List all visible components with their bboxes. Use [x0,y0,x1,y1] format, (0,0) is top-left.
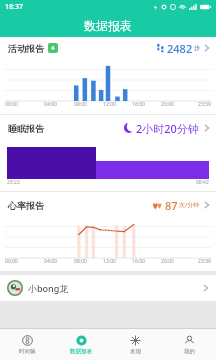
staticText: 12:00 [103,101,116,108]
staticText: 23:22 [7,179,20,186]
staticText: 4 [51,44,55,52]
button[interactable]: 发现 [108,329,162,360]
staticText: 小bong龙 [28,282,69,294]
button[interactable]: 我的 [162,329,216,360]
staticText: 23:59 [198,258,211,265]
staticText: 2482 [167,41,193,56]
staticText: 87 [165,198,178,213]
staticText: 00:00 [5,258,18,265]
staticText: 00:00 [5,101,18,108]
staticText: 2小时20分钟 [136,121,199,136]
staticText: 08:00 [74,258,87,265]
staticText: 00:42 [196,179,209,186]
staticText: 发现 [130,348,141,355]
staticText: 我的 [184,348,195,355]
staticText: 16:00 [132,258,145,265]
staticText: 时间轴 [19,348,36,355]
staticText: 20:00 [161,101,174,108]
staticText: 18:37 [5,2,23,12]
button[interactable]: 时间轴 [0,329,54,360]
button[interactable]: 数据报表 [54,329,108,360]
staticText: 数据报表 [84,18,132,33]
staticText: 04:00 [44,258,57,265]
staticText: 12:00 [103,258,116,265]
staticText: 04:00 [44,101,57,108]
staticText: 次/分钟 [179,201,200,209]
staticText: 心率报告 [8,200,44,211]
staticText: 睡眠报告 [8,123,44,134]
staticText: 步 [194,44,200,52]
button[interactable]: 活动报告 [0,37,216,59]
button[interactable]: 小bong龙 [0,275,216,301]
staticText: 20:00 [161,258,174,265]
staticText: 数据报表 [70,348,92,355]
staticText: 活动报告 [8,43,44,54]
staticText: 08:00 [74,101,87,108]
staticText: 23:59 [198,101,211,108]
staticText: 16:00 [132,101,145,108]
button[interactable]: 心率报告 [0,194,216,216]
button[interactable]: 睡眠报告 [0,117,216,139]
